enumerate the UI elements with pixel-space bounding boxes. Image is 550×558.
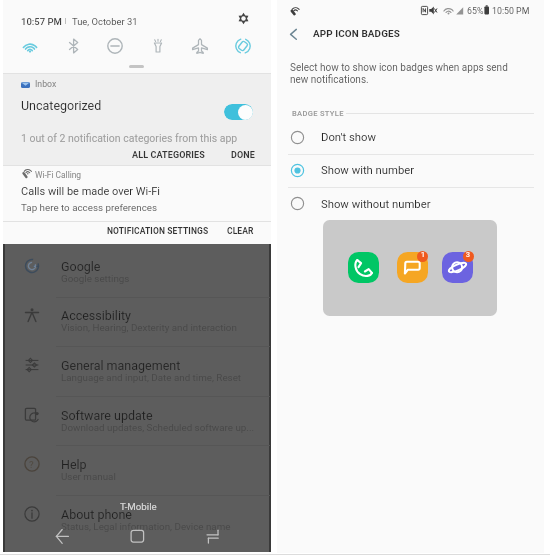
- staticText: Show without number: [321, 198, 431, 211]
- button[interactable]: Recent apps: [204, 528, 226, 546]
- staticText: 3: [466, 251, 470, 259]
- staticText: Calls will be made over Wi-Fi: [21, 185, 161, 198]
- staticText: ALL CATEGORIES: [132, 150, 205, 161]
- staticText: Don't show: [321, 131, 376, 144]
- staticText: BADGE STYLE: [292, 109, 344, 118]
- button[interactable]: [227, 147, 256, 161]
- staticText: CLEAR: [227, 226, 254, 236]
- staticText: APP ICON BADGES: [313, 28, 400, 40]
- button[interactable]: [3, 448, 271, 498]
- button[interactable]: [128, 147, 207, 161]
- staticText: T-Mobile: [120, 501, 157, 512]
- button[interactable]: [277, 121, 544, 154]
- staticText: Google: [61, 259, 101, 274]
- staticText: new notifications.: [290, 74, 369, 86]
- staticText: Help: [61, 457, 87, 472]
- staticText: Show with number: [321, 164, 415, 177]
- staticText: Software update: [61, 408, 153, 423]
- staticText: 10:50 PM: [492, 6, 530, 16]
- button[interactable]: Back: [288, 27, 302, 42]
- button[interactable]: Wi-Fi: [21, 37, 39, 55]
- staticText: User manual: [61, 471, 116, 482]
- button[interactable]: Uncategorized notifications on: [224, 104, 253, 120]
- staticText: Tue, October 31: [72, 16, 138, 27]
- staticText: Select how to show icon badges when apps…: [290, 62, 508, 74]
- staticText: ?: [29, 459, 34, 470]
- staticText: Google settings: [61, 273, 130, 284]
- button[interactable]: [3, 349, 271, 399]
- staticText: Tap here to access preferences: [21, 202, 158, 213]
- staticText: Uncategorized: [21, 98, 102, 113]
- staticText: 10:57 PM: [21, 16, 62, 27]
- staticText: About phone: [61, 507, 132, 522]
- button[interactable]: Airplane mode: [191, 37, 209, 55]
- button[interactable]: [3, 299, 271, 349]
- button[interactable]: Flashlight: [149, 37, 167, 55]
- staticText: 1: [421, 251, 425, 259]
- staticText: Status, Legal information, Device name: [61, 521, 231, 532]
- staticText: NOTIFICATION SETTINGS: [107, 226, 209, 236]
- button[interactable]: [306, 24, 416, 44]
- staticText: 65%: [467, 6, 484, 16]
- staticText: Inbox: [35, 79, 57, 89]
- button[interactable]: [277, 187, 544, 220]
- button[interactable]: [397, 252, 428, 283]
- button[interactable]: [442, 252, 473, 283]
- button[interactable]: [3, 398, 271, 448]
- button[interactable]: Back: [52, 528, 74, 546]
- staticText: Language and input, Date and time, Reset: [61, 372, 242, 383]
- staticText: General management: [61, 358, 181, 373]
- button[interactable]: [3, 249, 271, 299]
- staticText: DONE: [231, 150, 255, 161]
- button[interactable]: [3, 497, 271, 547]
- button[interactable]: Home: [128, 528, 148, 546]
- staticText: 1 out of 2 notification categories from …: [21, 132, 238, 144]
- button[interactable]: Auto rotate: [234, 37, 252, 55]
- button[interactable]: 10:57 PM: [21, 16, 62, 27]
- button[interactable]: [277, 154, 544, 187]
- button[interactable]: Do not disturb: [106, 37, 124, 55]
- button[interactable]: Bluetooth: [64, 37, 82, 55]
- button[interactable]: [103, 223, 209, 238]
- staticText: Vision, Hearing, Dexterity and interacti…: [61, 322, 237, 333]
- staticText: Wi-Fi Calling: [35, 170, 82, 180]
- button[interactable]: Settings: [237, 12, 250, 25]
- button[interactable]: [348, 252, 379, 283]
- button[interactable]: [223, 223, 256, 238]
- staticText: Accessibility: [61, 308, 131, 323]
- staticText: Download updates, Scheduled software up.…: [61, 422, 255, 433]
